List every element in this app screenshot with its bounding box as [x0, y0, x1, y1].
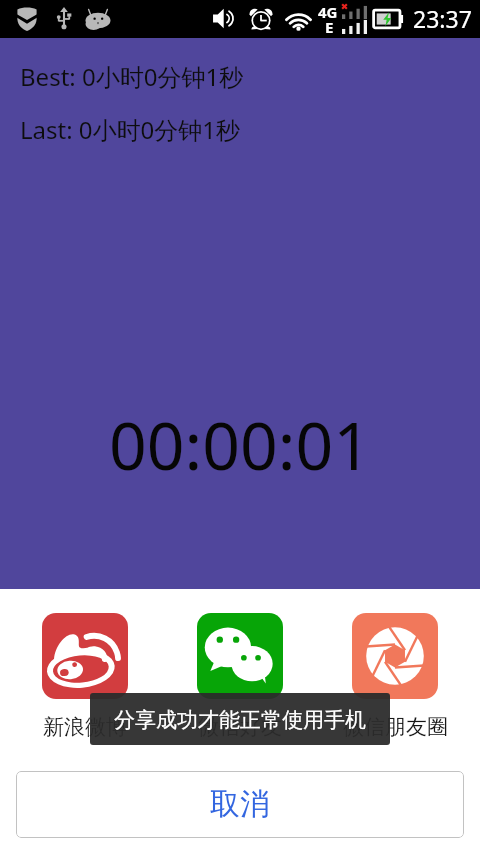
button[interactable]: Share to WeChat: [167, 613, 313, 743]
staticText: Best: 0小时0分钟1秒: [20, 60, 244, 93]
staticText: 微信好友: [198, 714, 282, 740]
staticText: 微信朋友圈: [343, 714, 448, 740]
staticText: 新浪微博: [43, 714, 127, 740]
button[interactable]: 取消: [16, 771, 464, 838]
staticText: E: [325, 17, 334, 37]
staticText: Last: 0小时0分钟1秒: [20, 113, 241, 146]
staticText: 4G: [318, 2, 338, 22]
staticText: 00:00:01: [109, 399, 371, 489]
button[interactable]: Share to Sina Weibo: [12, 613, 158, 743]
button[interactable]: Share to WeChat Moments: [322, 613, 468, 743]
staticText: 取消: [210, 785, 270, 823]
staticText: 23:37: [413, 3, 472, 34]
staticText: 分享成功才能正常使用手机: [114, 707, 366, 733]
